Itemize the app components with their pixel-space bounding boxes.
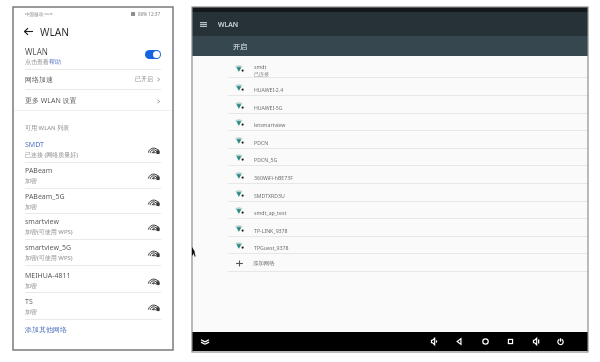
staticText: 添加网络 bbox=[253, 260, 275, 267]
staticText: TPGuest_9378 bbox=[254, 244, 289, 251]
button[interactable]: smdt_ap_test bbox=[192, 201, 588, 219]
button[interactable]: Menu bbox=[196, 17, 210, 31]
staticText: 360WiFi-hBE73F bbox=[254, 174, 293, 181]
button[interactable]: Back bbox=[452, 332, 466, 351]
staticText: 已开启 bbox=[135, 75, 153, 83]
button[interactable]: PDCN bbox=[192, 131, 588, 149]
staticText: HUAWEI-5G bbox=[254, 104, 283, 111]
staticText: TS bbox=[25, 297, 33, 307]
button[interactable]: PABeam_5G bbox=[13, 190, 173, 213]
button[interactable]: Expand notifications bbox=[196, 332, 213, 351]
button[interactable]: Volume down bbox=[427, 332, 441, 351]
staticText: 添加其他网络 bbox=[25, 325, 67, 334]
button[interactable]: TP-LINK_9378 bbox=[192, 219, 588, 237]
staticText: 网络加速 bbox=[25, 75, 53, 84]
staticText: 点击查看 bbox=[25, 58, 49, 66]
button[interactable]: Recents bbox=[503, 332, 517, 351]
staticText: 已连接 bbox=[254, 71, 269, 77]
staticText: 中国移动 ᵛᵒᴸᵀᴱ bbox=[25, 11, 53, 17]
button[interactable]: 更多 WLAN 设置 bbox=[13, 92, 173, 110]
staticText: SMDT bbox=[25, 140, 44, 150]
button[interactable]: PABeam bbox=[13, 164, 173, 187]
staticText: 86% 12:37 bbox=[138, 11, 161, 17]
staticText: PABeam_5G bbox=[25, 192, 65, 202]
staticText: TP-LINK_9378 bbox=[254, 227, 288, 234]
staticText: HUAWEI-2.4 bbox=[254, 86, 284, 93]
staticText: PABeam bbox=[25, 166, 53, 176]
button[interactable]: 添加其他网络 bbox=[13, 320, 173, 339]
button[interactable]: HUAWEI-5G bbox=[192, 96, 588, 114]
button[interactable]: smdt bbox=[192, 57, 588, 78]
staticText: letsmartview bbox=[254, 121, 286, 128]
staticText: smartview_5G bbox=[25, 243, 72, 253]
staticText: smdt_ap_test bbox=[254, 209, 287, 216]
staticText: 加密 bbox=[25, 308, 37, 316]
button[interactable]: Volume up bbox=[529, 332, 543, 351]
button[interactable]: Back bbox=[22, 25, 35, 38]
button[interactable]: SMDT bbox=[13, 138, 173, 161]
staticText: 可用 WLAN 列表 bbox=[25, 124, 70, 132]
staticText: 更多 WLAN 设置 bbox=[25, 96, 77, 106]
button[interactable]: TPGuest_9378 bbox=[192, 236, 588, 254]
staticText: 已连接 (网络质量好) bbox=[25, 151, 79, 159]
button[interactable]: PDCN_5G bbox=[192, 148, 588, 166]
staticText: WLAN bbox=[25, 46, 48, 57]
staticText: PDCN_5G bbox=[254, 156, 278, 163]
button[interactable]: Home bbox=[478, 332, 492, 351]
button[interactable]: 网络加速 bbox=[13, 70, 173, 88]
staticText: 帮助 bbox=[49, 58, 61, 66]
button[interactable]: 360WiFi-hBE73F bbox=[192, 166, 588, 184]
button[interactable]: 添加网络 bbox=[192, 254, 588, 272]
button[interactable]: Power bbox=[553, 332, 567, 351]
staticText: PDCN bbox=[254, 139, 269, 146]
staticText: SMDTXRD3U bbox=[254, 192, 285, 199]
button[interactable]: TS bbox=[13, 295, 173, 318]
staticText: 加密(可使用 WPS) bbox=[25, 228, 73, 236]
staticText: 加密 bbox=[25, 177, 37, 185]
button[interactable]: letsmartview bbox=[192, 113, 588, 131]
staticText: WLAN bbox=[218, 20, 238, 30]
staticText: WLAN bbox=[40, 25, 70, 39]
staticText: smdt bbox=[254, 63, 267, 70]
staticText: MEIHUA-4811 bbox=[25, 271, 71, 281]
button[interactable]: smartview bbox=[13, 215, 173, 238]
button[interactable]: WLAN switch bbox=[145, 50, 161, 59]
button[interactable]: MEIHUA-4811 bbox=[13, 269, 173, 292]
staticText: 加密 bbox=[25, 282, 37, 290]
staticText: 开启 bbox=[233, 42, 247, 51]
button[interactable]: 开启 bbox=[192, 36, 588, 56]
staticText: 加密 bbox=[25, 203, 37, 211]
staticText: smartview bbox=[25, 217, 59, 227]
button[interactable]: HUAWEI-2.4 bbox=[192, 78, 588, 96]
button[interactable] bbox=[13, 45, 173, 63]
button[interactable]: smartview_5G bbox=[13, 241, 173, 264]
button[interactable]: SMDTXRD3U bbox=[192, 184, 588, 202]
staticText: 加密(可使用 WPS) bbox=[25, 254, 73, 262]
